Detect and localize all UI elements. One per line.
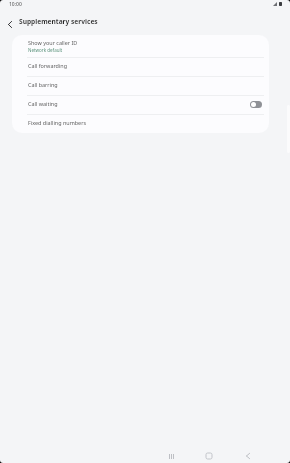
staticText: Supplementary services	[19, 17, 98, 26]
staticText: Network default	[28, 47, 63, 53]
staticText: Fixed dialling numbers	[28, 119, 87, 126]
staticText: Call barring	[28, 81, 58, 88]
button[interactable]: Back	[238, 446, 258, 463]
button[interactable]: Call forwarding	[12, 58, 269, 76]
button[interactable]: Call waiting	[12, 96, 269, 114]
button[interactable]: Fixed dialling numbers	[12, 115, 269, 133]
button[interactable]: Home	[199, 446, 219, 463]
staticText: Call waiting	[28, 100, 58, 107]
staticText: 10:00	[9, 1, 22, 8]
button[interactable]: Recents	[161, 446, 181, 463]
button[interactable]: Navigate up	[3, 17, 17, 31]
button[interactable]: Call barring	[12, 77, 269, 95]
button[interactable]: Show your caller ID	[12, 35, 269, 57]
staticText: Show your caller ID	[28, 39, 78, 46]
staticText: Call forwarding	[28, 62, 68, 69]
